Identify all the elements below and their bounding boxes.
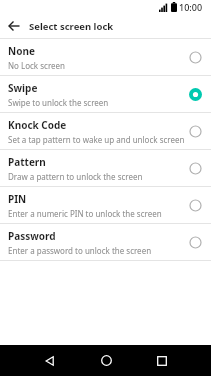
button[interactable]: Pattern <box>0 150 211 187</box>
button[interactable] <box>8 17 26 35</box>
button[interactable]: None <box>0 39 211 76</box>
button[interactable] <box>78 345 134 376</box>
button[interactable]: Password <box>0 224 211 261</box>
button[interactable] <box>134 345 190 376</box>
staticText: PIN <box>8 192 27 206</box>
staticText: 10:00 <box>179 1 203 13</box>
button[interactable]: Knock Code <box>0 113 211 150</box>
button[interactable] <box>22 345 78 376</box>
button[interactable]: Swipe <box>0 76 211 113</box>
staticText: Draw a pattern to unlock the screen <box>8 171 143 182</box>
staticText: Swipe <box>8 81 38 95</box>
staticText: None <box>8 44 35 58</box>
staticText: Swipe to unlock the screen <box>8 97 109 108</box>
staticText: Select screen lock <box>29 20 114 33</box>
staticText: Knock Code <box>8 118 67 132</box>
button[interactable]: PIN <box>0 187 211 224</box>
staticText: Enter a numeric PIN to unlock the screen <box>8 208 162 219</box>
staticText: No Lock screen <box>8 60 66 71</box>
staticText: Set a tap pattern to wake up and unlock … <box>8 134 185 145</box>
staticText: Password <box>8 229 56 243</box>
staticText: Enter a password to unlock the screen <box>8 245 152 256</box>
staticText: Pattern <box>8 155 46 169</box>
